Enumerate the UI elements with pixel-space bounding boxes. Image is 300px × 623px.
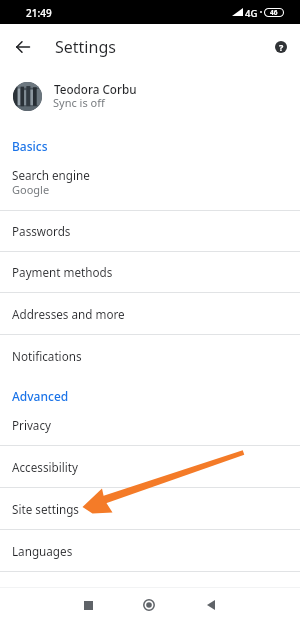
- button[interactable]: Teodora Corbu: [0, 70, 300, 126]
- staticText: Notifications: [12, 348, 82, 364]
- staticText: Accessibility: [12, 459, 78, 475]
- staticText: Payment methods: [12, 264, 113, 280]
- button[interactable]: Site settings: [0, 488, 300, 529]
- staticText: Advanced: [12, 388, 69, 404]
- button[interactable]: Back: [193, 587, 229, 623]
- button[interactable]: Help and feedback: [265, 31, 297, 63]
- staticText: 46: [270, 8, 278, 17]
- staticText: 21:49: [26, 6, 52, 20]
- staticText: Search engine: [12, 167, 90, 183]
- staticText: Privacy: [12, 417, 51, 433]
- button[interactable]: Accessibility: [0, 446, 300, 487]
- button[interactable]: Recent apps: [70, 587, 106, 623]
- staticText: Addresses and more: [12, 306, 125, 322]
- staticText: 4G: [245, 7, 258, 20]
- button[interactable]: Passwords: [0, 211, 300, 251]
- button[interactable]: Addresses and more: [0, 293, 300, 334]
- button[interactable]: Search engine: [0, 159, 300, 210]
- staticText: ?: [279, 41, 284, 53]
- button[interactable]: Payment methods: [0, 252, 300, 292]
- staticText: Teodora Corbu: [54, 81, 137, 97]
- staticText: Sync is off: [53, 95, 105, 110]
- staticText: Google: [12, 182, 50, 197]
- button[interactable]: Languages: [0, 530, 300, 571]
- button[interactable]: Navigate up: [7, 31, 39, 63]
- button[interactable]: Privacy: [0, 405, 300, 445]
- staticText: Passwords: [12, 223, 71, 239]
- staticText: Settings: [55, 36, 116, 58]
- staticText: Basics: [12, 138, 48, 154]
- button[interactable]: Home: [131, 587, 167, 623]
- staticText: Languages: [12, 543, 73, 559]
- staticText: Site settings: [12, 501, 79, 517]
- button[interactable]: Notifications: [0, 335, 300, 377]
